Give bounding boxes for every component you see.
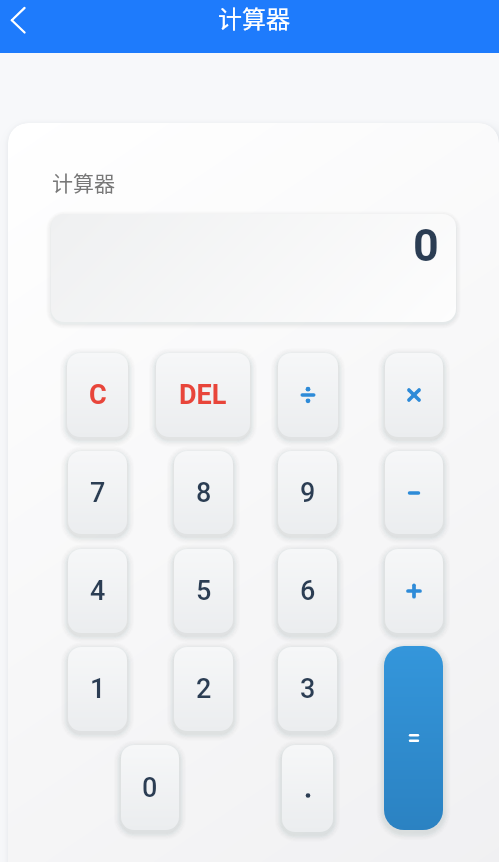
button[interactable]: Decimal point bbox=[282, 745, 333, 832]
button[interactable]: 9 bbox=[278, 451, 337, 534]
button[interactable]: 1 bbox=[68, 647, 127, 731]
button[interactable]: 4 bbox=[68, 549, 127, 633]
staticText: 计算器 bbox=[218, 0, 290, 35]
staticText: 5 bbox=[196, 575, 212, 607]
staticText: 0 bbox=[142, 772, 158, 804]
button[interactable]: 2 bbox=[174, 647, 233, 731]
button[interactable]: 7 bbox=[68, 451, 127, 534]
staticText: 1 bbox=[90, 673, 106, 705]
staticText: 6 bbox=[300, 575, 316, 607]
staticText: 8 bbox=[196, 477, 212, 509]
button[interactable]: DEL bbox=[156, 353, 250, 437]
button[interactable]: Multiply bbox=[385, 353, 443, 437]
button[interactable]: 3 bbox=[278, 647, 337, 731]
button[interactable]: Back bbox=[0, 0, 46, 40]
staticText: DEL bbox=[179, 379, 227, 411]
staticText: 7 bbox=[90, 477, 106, 509]
button[interactable]: 8 bbox=[174, 451, 233, 534]
button[interactable]: Minus bbox=[385, 451, 443, 534]
staticText: 计算器 bbox=[52, 167, 115, 197]
staticText: 9 bbox=[300, 477, 316, 509]
button[interactable]: 0 bbox=[121, 745, 179, 830]
staticText: 0 bbox=[413, 219, 439, 272]
button[interactable]: 6 bbox=[278, 549, 337, 633]
button[interactable]: Equals bbox=[384, 646, 443, 830]
staticText: C bbox=[89, 379, 107, 411]
button[interactable]: Divide bbox=[278, 353, 338, 437]
button[interactable]: 5 bbox=[174, 549, 233, 633]
button[interactable]: C bbox=[67, 353, 128, 437]
staticText: 4 bbox=[90, 575, 106, 607]
staticText: 3 bbox=[300, 673, 316, 705]
button[interactable]: Plus bbox=[385, 549, 443, 633]
staticText: 2 bbox=[196, 673, 212, 705]
